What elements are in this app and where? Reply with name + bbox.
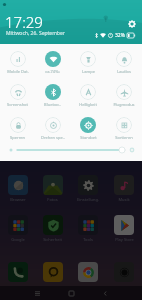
button[interactable]: Play Store [106, 215, 142, 243]
button[interactable]: Google [0, 215, 35, 243]
button[interactable] [0, 144, 142, 156]
staticText: ca.74‰ [45, 69, 60, 74]
button[interactable]: Camera [114, 262, 134, 282]
staticText: Sperren [10, 135, 25, 140]
button[interactable]: Sicherheit [35, 215, 70, 243]
staticText: Fotos [47, 197, 58, 202]
staticText: 17:29 [5, 12, 43, 32]
staticText: Einstellung. [77, 197, 99, 202]
button[interactable]: Musik [106, 175, 142, 203]
button[interactable]: Tools [70, 215, 106, 243]
button[interactable]: Messages [43, 262, 63, 282]
staticText: 32% [115, 32, 125, 39]
staticText: Tools [83, 237, 93, 242]
button[interactable]: Phone [8, 262, 28, 282]
staticText: Bluetoo.. [44, 102, 61, 107]
button[interactable]: Flugmodus [106, 80, 142, 113]
button[interactable]: Settings [127, 19, 137, 29]
button[interactable]: Back [88, 286, 122, 300]
button[interactable]: ca.74‰ [35, 47, 70, 80]
button[interactable]: Chrome [78, 262, 98, 282]
staticText: Browser [10, 197, 26, 202]
staticText: Flugmodus [113, 102, 135, 107]
staticText: Lampe [82, 69, 95, 74]
button[interactable]: Recents [20, 286, 54, 300]
staticText: Mobile Dat. [7, 69, 29, 74]
staticText: Sortieren [115, 135, 133, 140]
staticText: Lautlos [117, 69, 131, 74]
staticText: Play Store [115, 237, 134, 242]
button[interactable]: Sortieren [106, 113, 142, 146]
staticText: Google [11, 237, 25, 242]
button[interactable]: Standort [70, 113, 106, 146]
button[interactable]: Fotos [35, 175, 70, 203]
staticText: Helligkeit [79, 102, 97, 107]
button[interactable]: Sperren [0, 113, 35, 146]
staticText: Sicherheit [43, 237, 62, 242]
button[interactable]: Mobile Dat. [0, 47, 35, 80]
button[interactable]: Drehen spe.. [35, 113, 70, 146]
button[interactable]: Lampe [70, 47, 106, 80]
button[interactable]: Einstellung. [70, 175, 106, 203]
staticText: Standort [80, 135, 97, 140]
staticText: Screenshot [7, 102, 28, 107]
button[interactable]: Home [54, 286, 88, 300]
staticText: Drehen spe.. [41, 135, 65, 140]
button[interactable]: Lautlos [106, 47, 142, 80]
button[interactable]: Browser [0, 175, 35, 203]
button[interactable]: Screenshot [0, 80, 35, 113]
staticText: Mittwoch, 26. September [6, 30, 65, 37]
staticText: Musik [118, 197, 130, 202]
button[interactable]: Bluetoo.. [35, 80, 70, 113]
button[interactable]: Helligkeit [70, 80, 106, 113]
